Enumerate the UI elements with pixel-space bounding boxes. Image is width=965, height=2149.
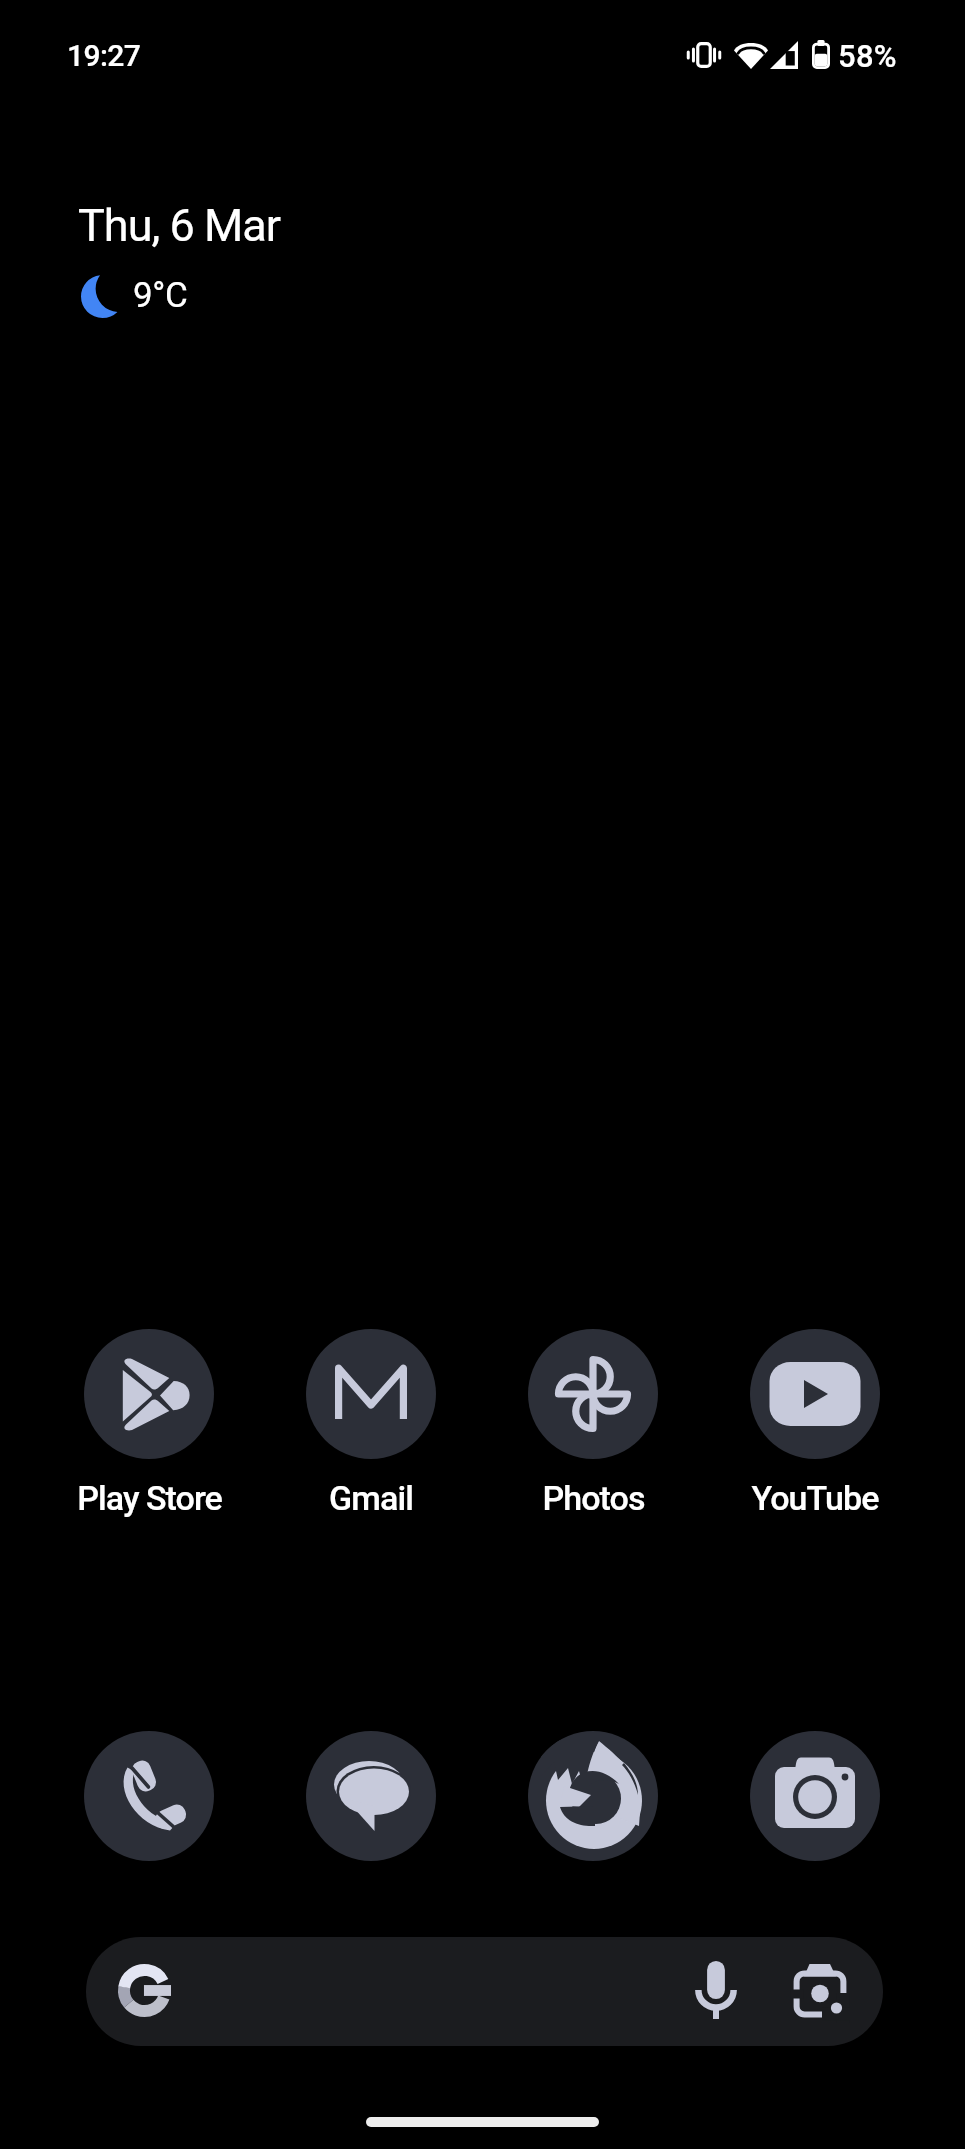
button[interactable]: Play Store	[39, 1329, 259, 1516]
button[interactable]: Camera	[750, 1731, 880, 1861]
staticText: Thu, 6 Mar	[78, 199, 281, 252]
button[interactable]: Gmail	[261, 1329, 481, 1516]
button[interactable]: Voice search	[675, 1949, 757, 2031]
button[interactable]: Search	[86, 1937, 883, 2046]
button[interactable]: YouTube	[705, 1329, 925, 1516]
staticText: 58%	[838, 38, 897, 74]
button[interactable]: Firefox	[528, 1731, 658, 1861]
staticText: 9°C	[133, 275, 188, 316]
button[interactable]: Date and weather	[60, 180, 380, 330]
button[interactable]: Google Lens	[779, 1954, 861, 2036]
staticText: 19:27	[67, 38, 141, 73]
staticText: YouTube	[751, 1478, 879, 1518]
button[interactable]: Phone	[84, 1731, 214, 1861]
button[interactable]: Photos	[483, 1329, 703, 1516]
staticText: Photos	[542, 1478, 645, 1518]
staticText: Gmail	[329, 1478, 413, 1518]
staticText: Play Store	[77, 1478, 222, 1518]
button[interactable]: Messages	[306, 1731, 436, 1861]
